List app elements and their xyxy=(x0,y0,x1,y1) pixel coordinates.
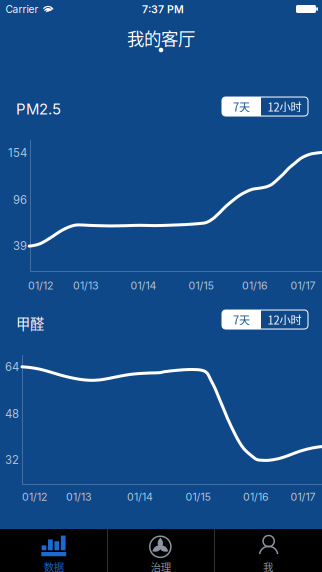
staticText: 01/12 xyxy=(22,491,47,503)
staticText: 01/13 xyxy=(66,491,92,503)
staticText: 我的客厅 xyxy=(127,25,195,50)
staticText: PM2.5 xyxy=(16,100,61,118)
staticText: 12小时 xyxy=(267,98,301,115)
staticText: 我 xyxy=(263,559,273,572)
staticText: 01/15 xyxy=(185,491,210,503)
button[interactable]: 我 xyxy=(215,529,322,572)
staticText: 01/16 xyxy=(242,279,268,292)
staticText: 154 xyxy=(8,146,27,160)
button[interactable]: 12小时 xyxy=(261,310,308,329)
staticText: Carrier xyxy=(5,3,38,15)
staticText: 01/15 xyxy=(188,279,213,292)
staticText: 治理 xyxy=(151,559,171,572)
staticText: 01/17 xyxy=(290,279,315,292)
staticText: 7天 xyxy=(233,311,250,328)
staticText: 48 xyxy=(5,407,19,421)
button[interactable]: 数据 xyxy=(0,529,107,572)
staticText: 12小时 xyxy=(267,311,301,328)
staticText: 01/13 xyxy=(73,279,99,292)
button[interactable]: 12小时 xyxy=(261,97,308,116)
staticText: 01/12 xyxy=(28,279,53,292)
staticText: 64 xyxy=(5,360,19,374)
staticText: 7天 xyxy=(233,98,250,115)
button[interactable]: 7天 xyxy=(222,310,261,329)
button[interactable]: 治理 xyxy=(107,529,215,572)
staticText: 01/16 xyxy=(243,491,269,503)
staticText: 01/14 xyxy=(127,491,153,503)
staticText: 39 xyxy=(13,239,27,253)
button[interactable]: 7天 xyxy=(222,97,261,116)
staticText: 01/17 xyxy=(290,491,315,503)
staticText: 甲醛 xyxy=(16,313,44,334)
staticText: 01/14 xyxy=(130,279,156,292)
staticText: 32 xyxy=(5,453,19,467)
staticText: 96 xyxy=(13,193,27,207)
staticText: 数据 xyxy=(44,559,64,572)
staticText: 7:37 PM xyxy=(142,3,184,16)
